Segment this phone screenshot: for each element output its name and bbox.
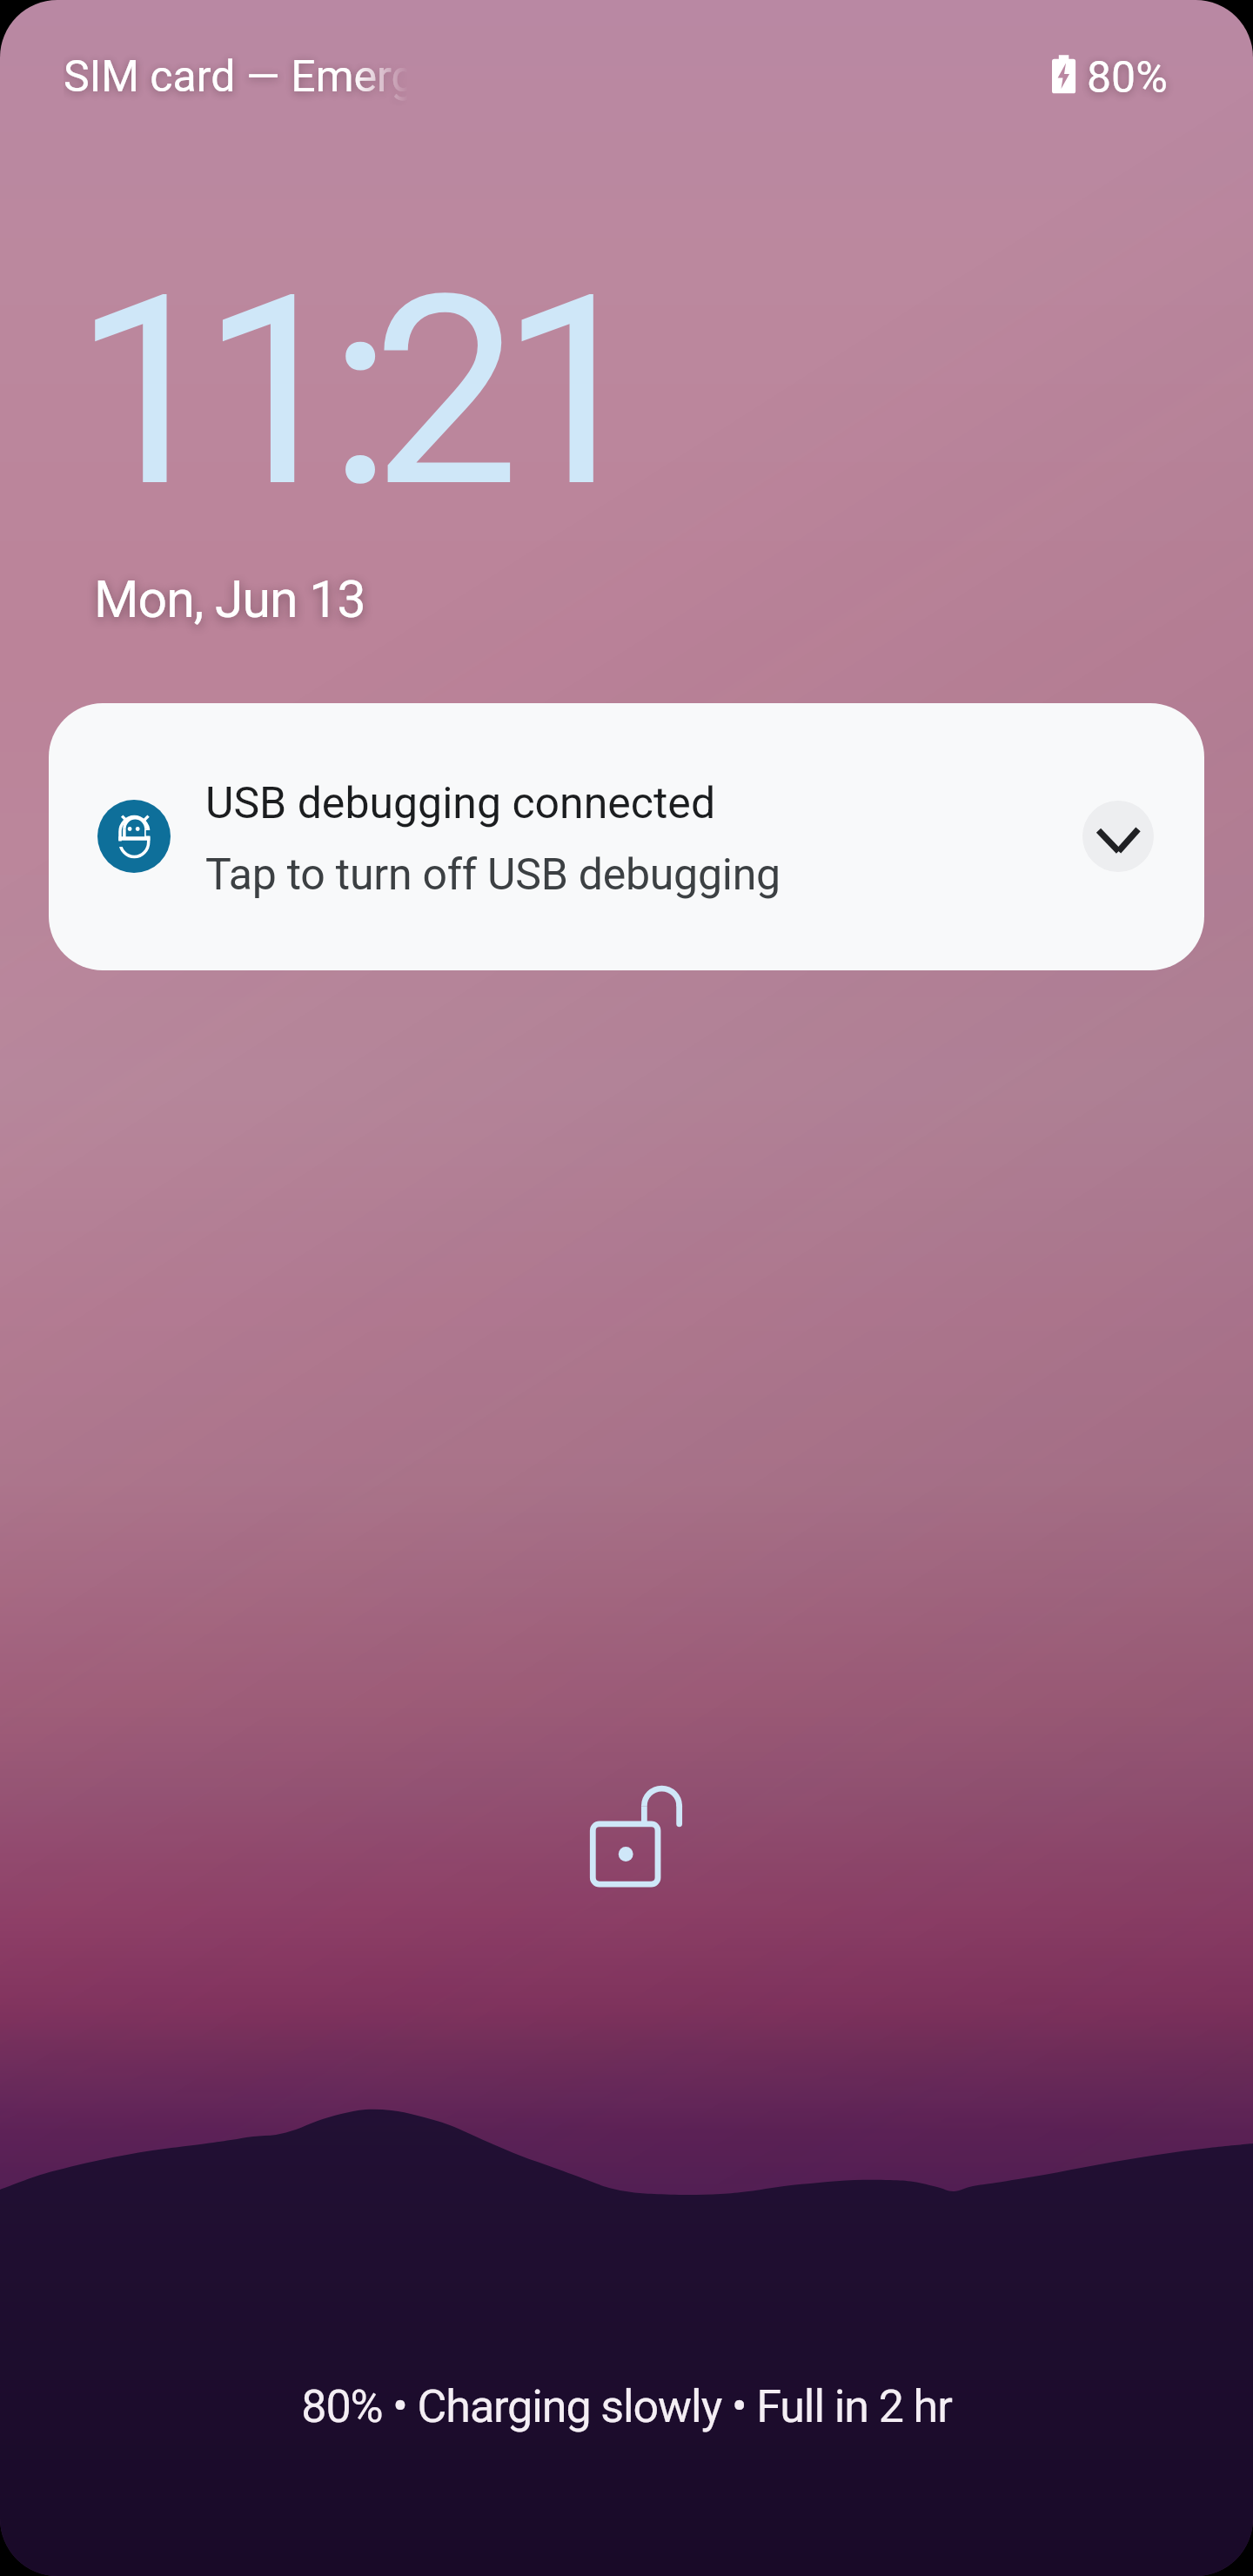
staticText: USB debugging connected — [205, 778, 716, 829]
staticText: SIM card — Emerg — [64, 51, 408, 103]
staticText: 11:21 — [73, 238, 628, 547]
button[interactable]: Expand notification — [1082, 801, 1154, 872]
staticText: 80% — [1087, 52, 1168, 104]
button[interactable]: Unlock — [574, 1775, 696, 1897]
staticText: 80% • Charging slowly • Full in 2 hr — [301, 2380, 952, 2433]
button[interactable]: USB debugging connected — [49, 703, 1204, 970]
staticText: Mon, Jun 13 — [94, 569, 365, 629]
staticText: Tap to turn off USB debugging — [205, 849, 781, 901]
